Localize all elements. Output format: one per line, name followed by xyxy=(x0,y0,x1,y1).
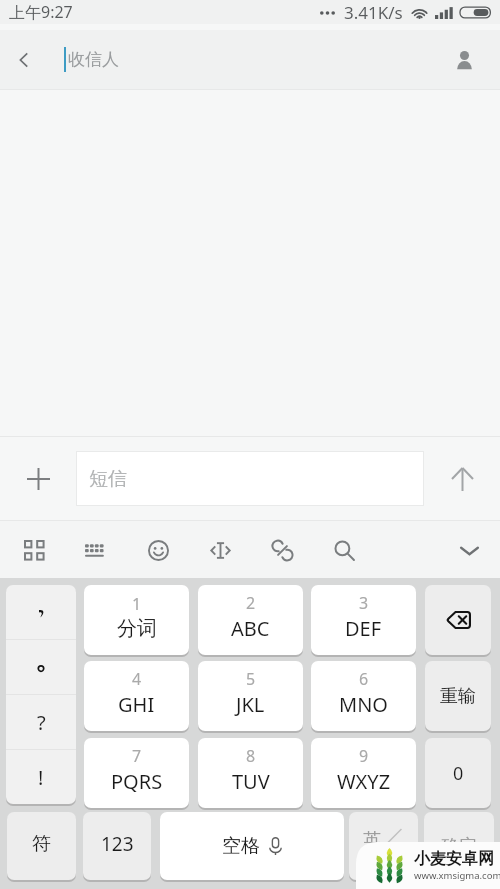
staticText: 收信人 xyxy=(68,49,119,70)
staticText: 小麦安卓网 xyxy=(414,849,494,869)
button[interactable]: 123 xyxy=(83,812,151,880)
staticText: JKL xyxy=(236,691,265,718)
button[interactable]: Send xyxy=(438,455,486,503)
staticText: MNO xyxy=(339,691,388,718)
button[interactable]: 7 xyxy=(84,738,189,808)
button[interactable]: Contacts xyxy=(440,36,488,84)
staticText: 分词 xyxy=(117,616,157,641)
button[interactable]: 4 xyxy=(84,661,189,731)
button[interactable]: 空格 xyxy=(160,812,344,880)
button[interactable]: Link xyxy=(260,528,304,572)
button[interactable]: 6 xyxy=(311,661,416,731)
staticText: 2 xyxy=(246,592,256,614)
button[interactable]: ! xyxy=(6,750,76,804)
button[interactable] xyxy=(6,640,76,694)
button[interactable]: 8 xyxy=(198,738,303,808)
button[interactable]: 重输 xyxy=(425,661,491,731)
button[interactable]: 1 xyxy=(84,585,189,655)
button[interactable]: Hide keyboard xyxy=(447,528,491,572)
button[interactable]: 0 xyxy=(425,738,491,808)
staticText: 符 xyxy=(32,832,51,856)
button[interactable]: Backspace xyxy=(425,585,491,655)
staticText: 上午9:27 xyxy=(9,1,73,23)
button[interactable]: 英 xyxy=(349,812,418,880)
button[interactable]: ? xyxy=(6,695,76,749)
button[interactable] xyxy=(6,585,76,639)
button[interactable]: Search xyxy=(322,528,366,572)
button[interactable]: 9 xyxy=(311,738,416,808)
staticText: 3.41K/s xyxy=(344,1,403,24)
staticText: 确定 xyxy=(441,835,477,858)
staticText: WXYZ xyxy=(337,768,391,795)
staticText: 短信 xyxy=(89,467,127,491)
staticText: 8 xyxy=(246,745,256,767)
staticText: 6 xyxy=(359,668,369,690)
staticText: 4 xyxy=(132,668,142,690)
button[interactable]: Back xyxy=(0,36,48,84)
staticText: www.xmsigma.com xyxy=(414,869,500,882)
button[interactable]: 2 xyxy=(198,585,303,655)
staticText: 0 xyxy=(453,761,464,786)
staticText: 123 xyxy=(101,831,134,857)
button[interactable]: 确定 xyxy=(424,812,494,880)
button[interactable]: 5 xyxy=(198,661,303,731)
staticText: 空格 xyxy=(222,834,260,858)
button[interactable]: Apps xyxy=(12,528,56,572)
button[interactable]: Emoji xyxy=(136,528,180,572)
staticText: 7 xyxy=(132,745,142,767)
button[interactable]: 3 xyxy=(311,585,416,655)
button[interactable]: 符 xyxy=(7,812,76,880)
button[interactable]: Add attachment xyxy=(14,455,62,503)
staticText: PQRS xyxy=(111,768,163,795)
staticText: 9 xyxy=(359,745,369,767)
staticText: ? xyxy=(37,709,46,736)
button[interactable]: Cursor xyxy=(198,528,242,572)
button[interactable]: Keyboard xyxy=(73,528,117,572)
staticText: TUV xyxy=(232,768,270,795)
staticText: 5 xyxy=(246,668,256,690)
staticText: 1 xyxy=(132,593,142,615)
staticText: ! xyxy=(38,764,44,791)
staticText: 3 xyxy=(359,592,369,614)
staticText: GHI xyxy=(118,691,155,718)
staticText: 重输 xyxy=(440,685,476,708)
staticText: 英 xyxy=(363,829,381,852)
staticText: DEF xyxy=(345,615,382,642)
staticText: ABC xyxy=(231,615,270,642)
button[interactable]: 短信 xyxy=(76,451,424,506)
